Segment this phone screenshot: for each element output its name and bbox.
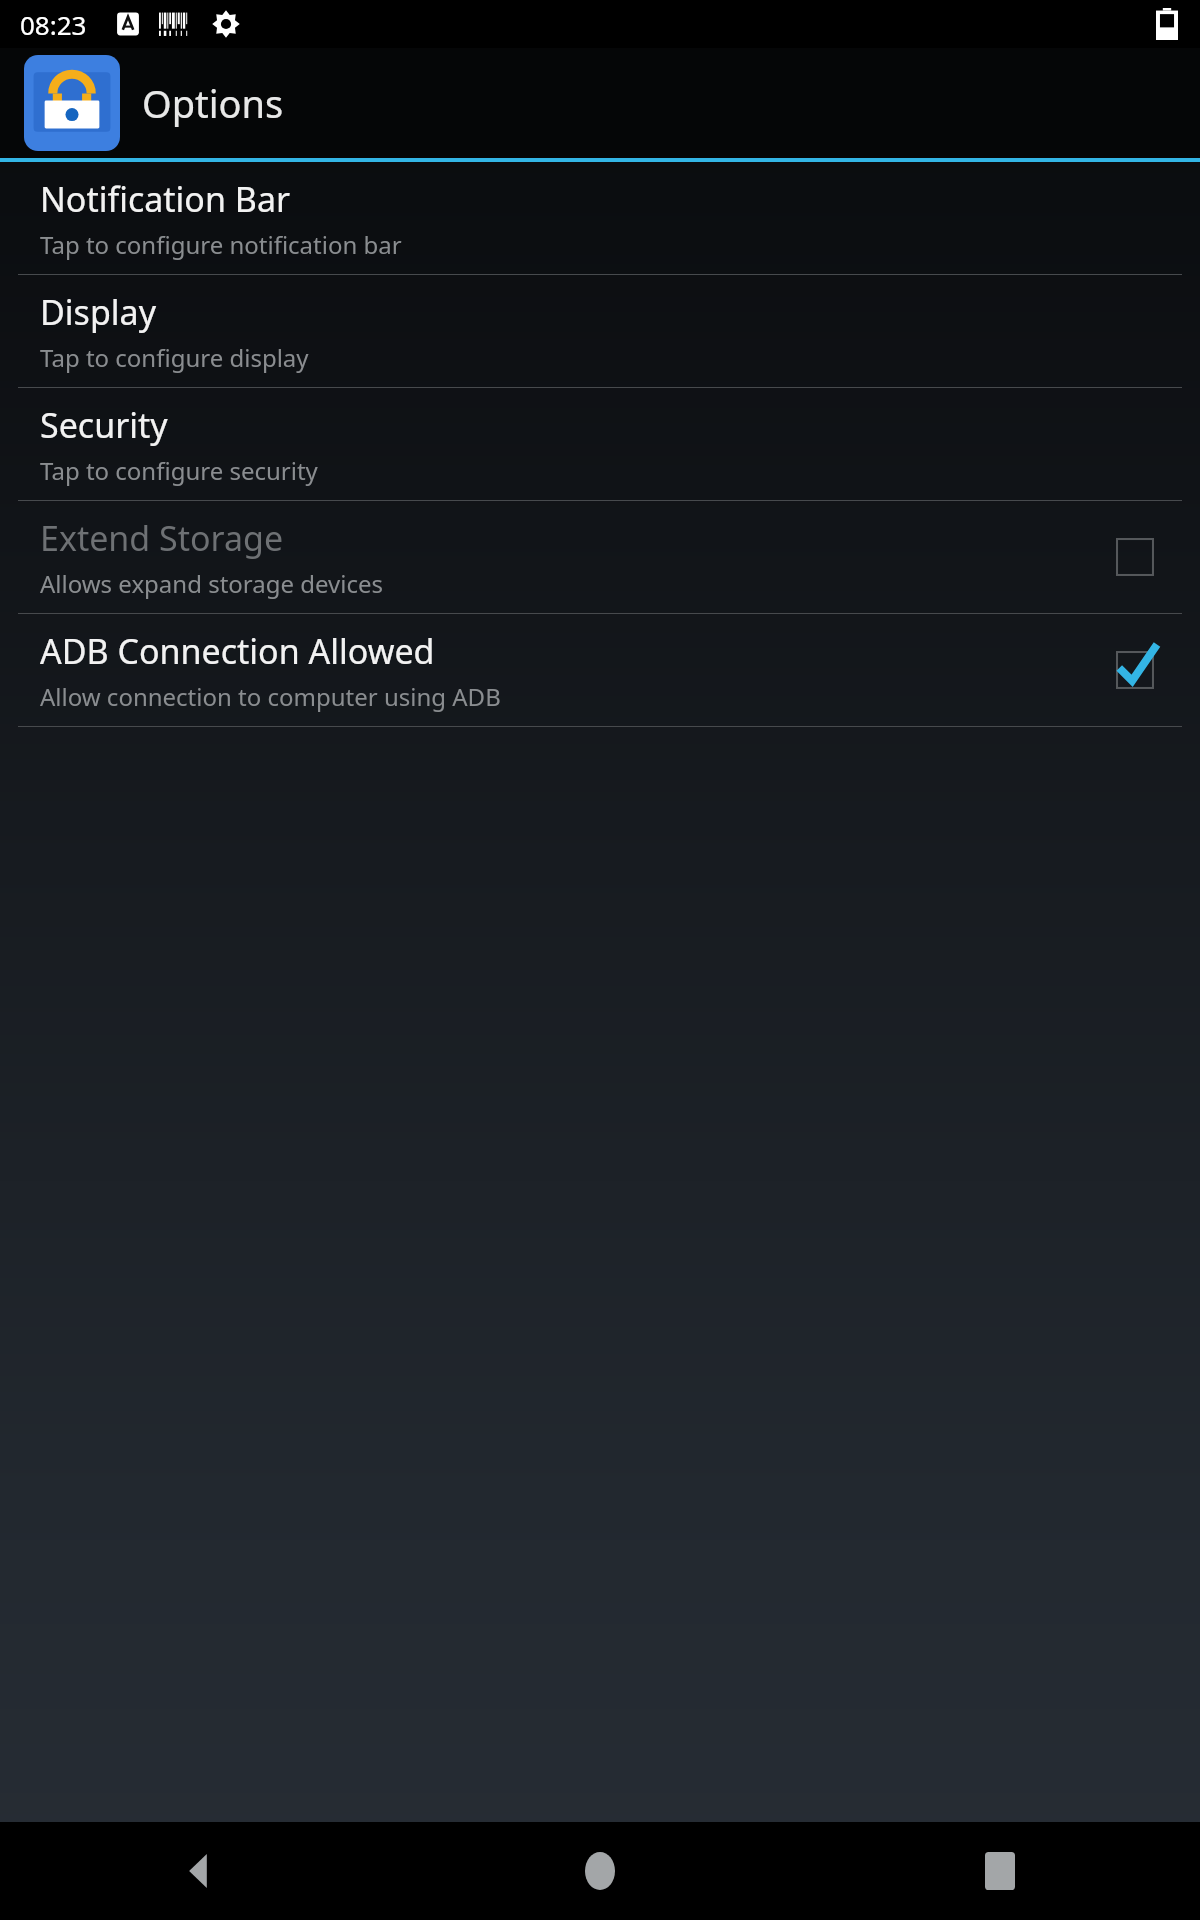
staticText: ADB Connection Allowed xyxy=(40,628,435,674)
button[interactable]: ADB Connection Allowed xyxy=(0,614,1200,727)
staticText: Security xyxy=(40,402,168,448)
button[interactable]: Unchecked xyxy=(1106,528,1164,586)
staticText: Tap to configure security xyxy=(40,454,318,487)
staticText: Display xyxy=(40,289,156,335)
button[interactable]: Display xyxy=(0,275,1200,388)
button[interactable]: Recent apps xyxy=(800,1822,1200,1920)
button[interactable]: Notification Bar xyxy=(0,162,1200,275)
button[interactable]: Back xyxy=(0,1822,400,1920)
button[interactable]: Options xyxy=(0,48,1200,158)
button[interactable]: Checked xyxy=(1106,641,1164,699)
button[interactable]: Home xyxy=(400,1822,800,1920)
staticText: Extend Storage xyxy=(40,515,284,561)
button[interactable]: Security xyxy=(0,388,1200,501)
staticText: Allow connection to computer using ADB xyxy=(40,680,501,713)
staticText: Tap to configure notification bar xyxy=(40,228,402,261)
staticText: Tap to configure display xyxy=(40,341,309,374)
staticText: Allows expand storage devices xyxy=(40,567,384,600)
staticText: Options xyxy=(142,77,284,129)
staticText: 08:23 xyxy=(20,7,87,42)
staticText: Notification Bar xyxy=(40,176,291,222)
button[interactable]: Extend Storage xyxy=(0,501,1200,614)
